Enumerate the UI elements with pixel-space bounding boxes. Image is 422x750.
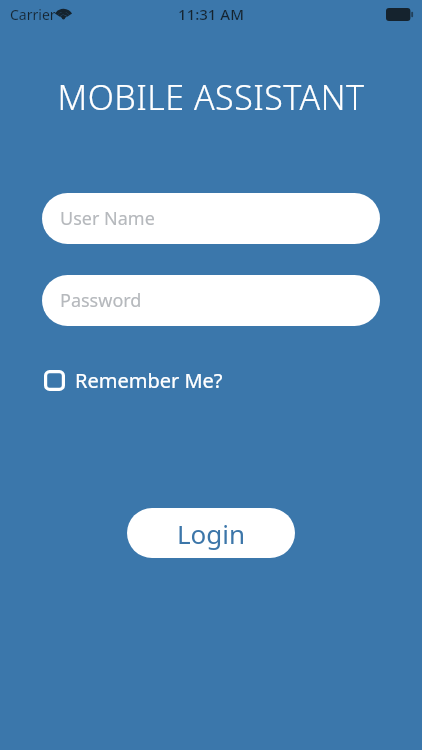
staticText: Login — [177, 516, 246, 551]
button[interactable]: Login — [127, 508, 295, 558]
staticText: Password — [60, 288, 142, 313]
staticText: User Name — [60, 206, 155, 231]
staticText: 11:31 AM — [0, 4, 422, 24]
button[interactable]: Remember Me? — [40, 363, 227, 398]
button[interactable]: User Name — [42, 193, 380, 244]
staticText: Carrier — [10, 5, 56, 24]
button[interactable]: Password — [42, 275, 380, 326]
staticText: Remember Me? — [75, 367, 223, 394]
staticText: MOBILE ASSISTANT — [0, 74, 422, 120]
